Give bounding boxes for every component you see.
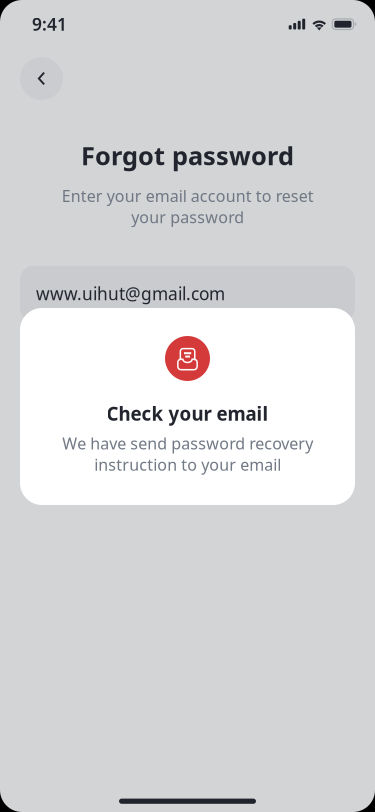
staticText: Enter your email account to reset your p… — [61, 185, 313, 228]
staticText: Forgot password — [81, 138, 294, 172]
staticText: www.uihut@gmail.com — [36, 282, 225, 305]
staticText: We have send password recovery instructi… — [62, 433, 313, 475]
button[interactable]: Back — [20, 57, 63, 100]
staticText: Check your email — [106, 401, 268, 426]
staticText: 9:41 — [32, 12, 67, 35]
